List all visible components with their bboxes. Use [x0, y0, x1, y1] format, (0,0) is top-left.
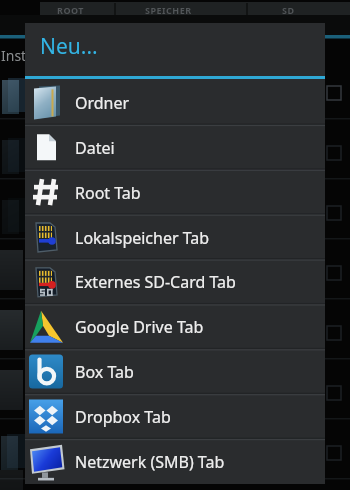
button[interactable]: Neu...	[25, 23, 325, 76]
staticText: Root Tab	[75, 182, 141, 204]
button[interactable]: Root Tab	[25, 170, 325, 215]
button[interactable]: Google Drive Tab	[25, 304, 325, 349]
button[interactable]: Box Tab	[25, 349, 325, 394]
button[interactable]: Externes SD-Card Tab	[25, 259, 325, 304]
staticText: Datei	[75, 137, 115, 159]
staticText: Neu...	[40, 32, 98, 61]
button[interactable]: Dropbox Tab	[25, 394, 325, 439]
staticText: Lokalspeicher Tab	[75, 227, 210, 249]
staticText: Dropbox Tab	[75, 406, 171, 428]
staticText: Inst	[1, 46, 27, 65]
button[interactable]: Lokalspeicher Tab	[25, 215, 325, 260]
staticText: ROOT	[57, 4, 85, 16]
button[interactable]: Datei	[25, 125, 325, 170]
staticText: Ordner	[75, 92, 130, 114]
staticText: Externes SD-Card Tab	[75, 271, 236, 293]
staticText: Netzwerk (SMB) Tab	[75, 451, 225, 473]
staticText: SD	[282, 4, 295, 16]
staticText: Google Drive Tab	[75, 316, 204, 338]
staticText: Box Tab	[75, 361, 134, 383]
staticText: SPEICHER	[145, 4, 192, 16]
button[interactable]: Ordner	[25, 80, 325, 125]
button[interactable]: Netzwerk (SMB) Tab	[25, 439, 325, 484]
